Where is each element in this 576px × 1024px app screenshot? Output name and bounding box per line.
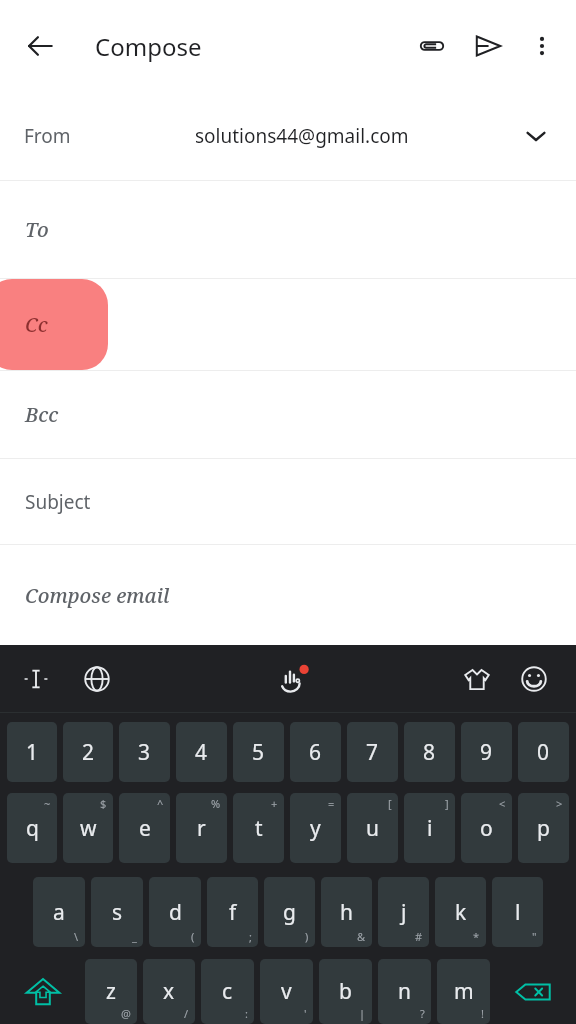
button[interactable]: To <box>0 181 576 278</box>
button[interactable]: / <box>143 959 195 1024</box>
staticText: Compose <box>95 30 202 63</box>
button[interactable]: ^ <box>119 793 170 863</box>
button[interactable]: ; <box>207 877 258 947</box>
button[interactable]: + <box>233 793 284 863</box>
button[interactable]: [ <box>347 793 398 863</box>
staticText: 5 <box>252 738 265 767</box>
button[interactable]: 7 <box>347 722 398 782</box>
button[interactable]: \ <box>33 877 85 947</box>
staticText: u <box>366 814 379 843</box>
button[interactable]: Back <box>12 18 68 74</box>
button[interactable]: @ <box>85 959 137 1024</box>
button[interactable]: * <box>435 877 486 947</box>
button[interactable]: ( <box>149 877 201 947</box>
staticText: 6 <box>309 738 322 767</box>
staticText: e <box>139 814 151 843</box>
staticText: ' <box>304 1006 307 1021</box>
button[interactable]: ? <box>378 959 431 1024</box>
staticText: | <box>359 1006 366 1021</box>
staticText: / <box>184 1006 189 1021</box>
button[interactable]: ! <box>437 959 490 1024</box>
button[interactable]: ~ <box>7 793 57 863</box>
staticText: 3 <box>138 738 151 767</box>
button[interactable]: " <box>492 877 543 947</box>
staticText: d <box>169 898 182 927</box>
button[interactable]: More options <box>516 20 568 72</box>
staticText: z <box>106 977 116 1006</box>
button[interactable]: : <box>201 959 254 1024</box>
button[interactable]: $ <box>63 793 113 863</box>
staticText: q <box>26 814 39 843</box>
button[interactable]: # <box>378 877 429 947</box>
staticText: 9 <box>480 738 493 767</box>
button[interactable]: 6 <box>290 722 341 782</box>
button[interactable]: 5 <box>233 722 284 782</box>
button[interactable]: 1 <box>7 722 57 782</box>
staticText: 4 <box>195 738 208 767</box>
staticText: & <box>357 929 366 944</box>
staticText: f <box>229 898 237 927</box>
staticText: n <box>398 977 411 1006</box>
staticText: 2 <box>82 738 95 767</box>
button[interactable]: Subject <box>0 459 576 544</box>
button[interactable]: From <box>0 92 576 180</box>
staticText: h <box>340 898 353 927</box>
staticText: ( <box>191 929 195 944</box>
staticText: 1 <box>26 738 39 767</box>
button[interactable]: Handwriting input <box>267 653 319 705</box>
button[interactable]: = <box>290 793 341 863</box>
staticText: y <box>310 814 321 843</box>
staticText: Subject <box>25 489 91 515</box>
staticText: @ <box>121 1006 131 1021</box>
staticText: w <box>80 814 97 843</box>
staticText: a <box>53 898 65 927</box>
button[interactable]: Emoji <box>510 655 558 703</box>
staticText: < <box>499 796 506 811</box>
button[interactable]: Compose email <box>0 545 576 645</box>
button[interactable]: ' <box>260 959 313 1024</box>
button[interactable]: Text editing <box>12 655 60 703</box>
staticText: ; <box>249 929 252 944</box>
staticText: \ <box>74 929 79 944</box>
button[interactable]: Cc <box>0 279 576 370</box>
staticText: Compose email <box>25 582 170 609</box>
button[interactable]: Attach file <box>404 18 460 74</box>
staticText: solutions44@gmail.com <box>195 123 409 149</box>
button[interactable]: > <box>518 793 569 863</box>
button[interactable]: & <box>321 877 372 947</box>
staticText: o <box>480 814 493 843</box>
button[interactable]: Change sender <box>514 114 558 158</box>
button[interactable]: Send <box>460 18 516 74</box>
staticText: i <box>427 814 433 843</box>
button[interactable]: ] <box>404 793 455 863</box>
button[interactable]: ) <box>264 877 315 947</box>
button[interactable]: 3 <box>119 722 170 782</box>
button[interactable]: 4 <box>176 722 227 782</box>
button[interactable]: 8 <box>404 722 455 782</box>
button[interactable]: 2 <box>63 722 113 782</box>
staticText: + <box>271 796 278 811</box>
staticText: [ <box>388 796 392 811</box>
button[interactable]: < <box>461 793 512 863</box>
staticText: s <box>112 898 123 927</box>
button[interactable]: 0 <box>518 722 569 782</box>
staticText: 0 <box>537 738 550 767</box>
button[interactable]: Shift <box>7 959 79 1024</box>
staticText: ? <box>420 1006 425 1021</box>
button[interactable]: Backspace <box>496 959 569 1024</box>
staticText: ~ <box>44 796 51 811</box>
button[interactable]: _ <box>91 877 143 947</box>
button[interactable]: Bcc <box>0 371 576 458</box>
button[interactable]: % <box>176 793 227 863</box>
staticText: ) <box>305 929 309 944</box>
staticText: ] <box>445 796 449 811</box>
button[interactable]: Themes <box>453 655 501 703</box>
staticText: b <box>339 977 352 1006</box>
staticText: k <box>455 898 467 927</box>
button[interactable]: | <box>319 959 372 1024</box>
staticText: > <box>556 796 563 811</box>
staticText: * <box>473 929 480 944</box>
staticText: : <box>245 1006 248 1021</box>
button[interactable]: Change language <box>73 655 121 703</box>
button[interactable]: 9 <box>461 722 512 782</box>
